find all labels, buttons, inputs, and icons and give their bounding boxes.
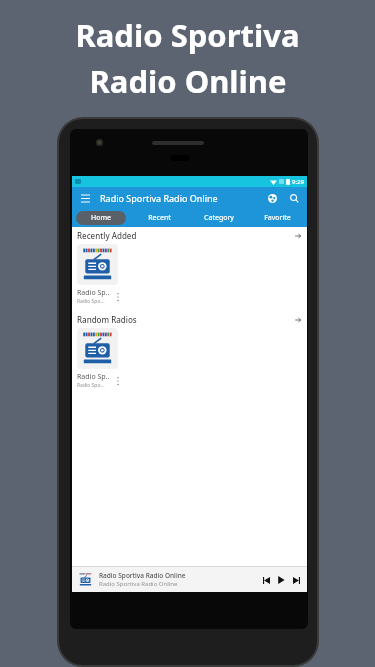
staticText: Radio Spo... [77, 298, 105, 305]
staticText: Radio Sportiva Radio Online [99, 580, 178, 588]
staticText: Recently Added [77, 230, 137, 241]
button[interactable]: Random Radios [77, 311, 302, 328]
button[interactable]: Radio Sportiva Radio Online [77, 244, 118, 285]
button[interactable]: Next [290, 574, 302, 586]
button[interactable]: More options [113, 290, 123, 304]
button[interactable]: Previous [260, 574, 272, 586]
staticText: Radio Sp.. [77, 372, 110, 382]
staticText: Radio Online [89, 60, 287, 102]
staticText: Radio Sportiva Radio Online [99, 571, 186, 580]
staticText: Radio Sp.. [77, 288, 110, 298]
button[interactable]: Recently Added [77, 227, 302, 244]
staticText: Radio Spo... [77, 382, 105, 389]
staticText: Category [204, 213, 234, 223]
button[interactable]: Category [193, 211, 244, 225]
button[interactable]: Theme [265, 191, 279, 205]
staticText: Radio Sportiva [75, 14, 300, 56]
button[interactable]: Recent [134, 211, 185, 225]
button[interactable]: Home [76, 211, 126, 225]
button[interactable]: Radio Sportiva Radio Online [77, 328, 118, 369]
button[interactable]: More options [113, 374, 123, 388]
button[interactable]: Play [275, 574, 287, 586]
button[interactable]: Search [287, 191, 301, 205]
staticText: Home [91, 213, 111, 223]
staticText: Recent [148, 213, 171, 223]
button[interactable]: Menu [78, 191, 92, 205]
button[interactable]: Favorite [252, 211, 303, 225]
staticText: Favorite [264, 213, 291, 223]
staticText: Random Radios [77, 314, 137, 325]
staticText: Radio Sportiva Radio Online [100, 192, 218, 204]
button[interactable]: Radio Sportiva Radio Online [77, 567, 302, 592]
staticText: 9:29 [292, 178, 304, 186]
